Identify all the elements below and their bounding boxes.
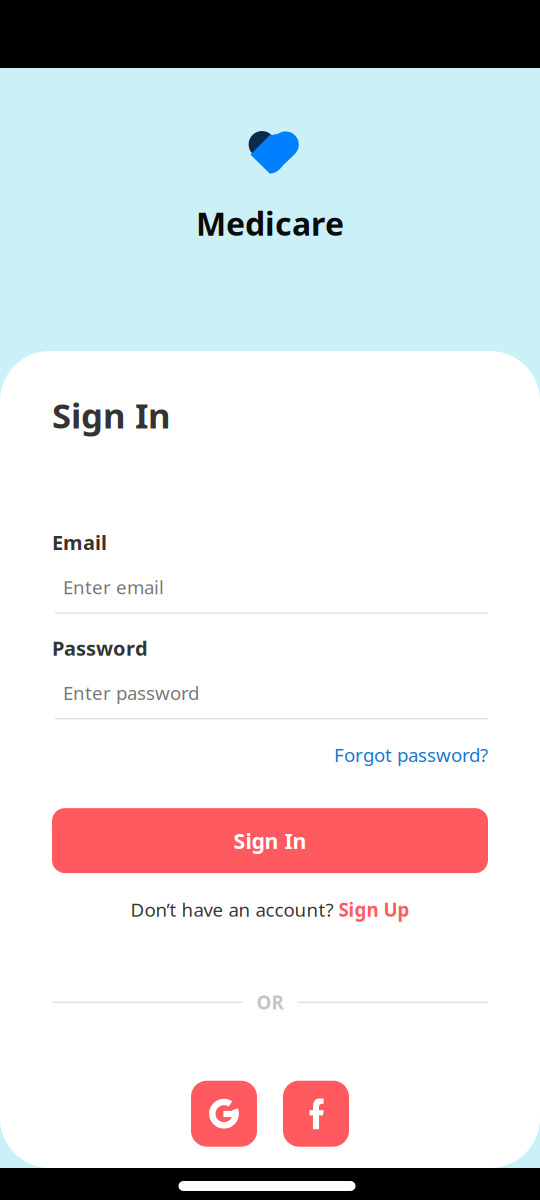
staticText: Sign In [52, 392, 171, 438]
staticText: Medicare [196, 202, 344, 244]
button[interactable]: Forgot password? [52, 719, 488, 767]
button[interactable]: Sign Up [338, 897, 409, 922]
staticText: Don’t have an account? [130, 897, 338, 922]
staticText: Password [52, 635, 148, 661]
staticText: Forgot password? [334, 742, 488, 767]
button[interactable]: Sign in with Facebook [283, 1081, 349, 1147]
staticText: Enter email [63, 575, 164, 599]
button[interactable]: Sign In [52, 808, 488, 873]
staticText: Enter password [63, 680, 199, 705]
staticText: Email [52, 529, 107, 556]
staticText: Sign In [233, 826, 306, 855]
staticText: Sign Up [338, 897, 409, 922]
staticText: OR [256, 990, 283, 1015]
button[interactable]: Sign in with Google [191, 1081, 257, 1147]
